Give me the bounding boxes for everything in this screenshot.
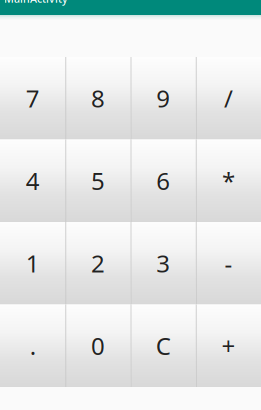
staticText: *: [222, 165, 235, 197]
staticText: MainActivity: [4, 0, 68, 6]
button[interactable]: 5: [65, 139, 130, 222]
button[interactable]: 0: [65, 304, 130, 387]
button[interactable]: .: [0, 304, 65, 387]
button[interactable]: -: [196, 222, 261, 304]
staticText: 5: [91, 165, 105, 197]
button[interactable]: 1: [0, 222, 65, 304]
button[interactable]: 9: [130, 57, 196, 139]
button[interactable]: 4: [0, 139, 65, 222]
staticText: 6: [156, 165, 170, 197]
button[interactable]: 2: [65, 222, 130, 304]
button[interactable]: +: [196, 304, 261, 387]
button[interactable]: *: [196, 139, 261, 222]
button[interactable]: 8: [65, 57, 130, 139]
button[interactable]: 6: [130, 139, 196, 222]
staticText: C: [156, 330, 171, 362]
staticText: 2: [91, 247, 105, 279]
button[interactable]: 3: [130, 222, 196, 304]
button[interactable]: C: [130, 304, 196, 387]
staticText: 3: [156, 247, 170, 279]
staticText: +: [221, 330, 235, 362]
staticText: 1: [26, 247, 40, 279]
button[interactable]: /: [196, 57, 261, 139]
staticText: 9: [156, 82, 170, 114]
button[interactable]: 7: [0, 57, 65, 139]
staticText: -: [224, 247, 232, 279]
staticText: 0: [91, 330, 105, 362]
staticText: 4: [26, 165, 40, 197]
staticText: .: [30, 330, 36, 362]
staticText: /: [224, 82, 233, 114]
staticText: 8: [91, 82, 105, 114]
staticText: 7: [26, 82, 40, 114]
